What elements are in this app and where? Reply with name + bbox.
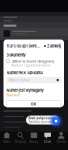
button[interactable]: Konto	[54, 131, 68, 144]
staticText: Numer PKK lub kursu	[6, 70, 42, 75]
staticText: Dokumenty	[6, 53, 25, 57]
staticText: Czat	[44, 140, 51, 143]
staticText: Wpisz numer	[9, 78, 30, 82]
staticText: Numer jest wymagany	[6, 88, 43, 92]
button[interactable]: Start	[0, 131, 14, 144]
staticText: Zamknij	[47, 44, 61, 48]
button[interactable]: Czat	[41, 131, 54, 144]
staticText: Start	[3, 140, 10, 143]
staticText: Sprawdź	[6, 93, 20, 97]
staticText: Kurs na uprawnienia	[6, 43, 40, 48]
staticText: Spróbuj ponownie	[29, 120, 57, 124]
button[interactable]: Brak połączenia	[26, 115, 59, 124]
staticText: Kursy	[29, 140, 38, 143]
staticText: Szukaj	[15, 140, 26, 143]
staticText: Komisji Egzaminacyjnej	[11, 64, 50, 67]
button[interactable]: Zamknij	[44, 43, 61, 49]
button[interactable]: Kursy	[27, 131, 41, 144]
button[interactable]: Szukaj	[14, 131, 27, 144]
staticText: Brak połączenia	[29, 116, 55, 120]
staticText: OK	[31, 102, 37, 106]
button[interactable]: OK	[6, 101, 61, 108]
staticText: Konto	[57, 140, 66, 143]
button[interactable]: Record	[49, 114, 63, 128]
staticText: Odbiór w biurze Okręgowej	[11, 59, 54, 63]
